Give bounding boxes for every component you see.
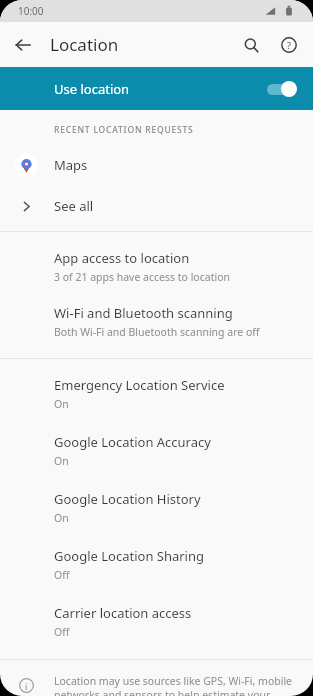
staticText: Use location [54, 80, 130, 98]
staticText: RECENT LOCATION REQUESTS [54, 124, 194, 136]
staticText: Off [54, 625, 70, 639]
staticText: Emergency Location Service [54, 376, 225, 394]
staticText: Maps [54, 156, 88, 174]
staticText: 3 of 21 apps have access to location [54, 270, 230, 284]
staticText: Google Location History [54, 490, 201, 508]
staticText: ? [287, 39, 291, 51]
button[interactable]: See all [0, 189, 313, 223]
button[interactable]: Google Location Accuracy [0, 433, 313, 468]
staticText: Carrier location access [54, 604, 192, 622]
button[interactable]: Use location [0, 67, 313, 110]
button[interactable]: Google Location Sharing [0, 547, 313, 582]
button[interactable]: Maps [0, 148, 313, 182]
staticText: On [54, 454, 69, 468]
staticText: App access to location [54, 249, 190, 267]
button[interactable]: App access to location [0, 232, 313, 284]
staticText: Location may use sources like GPS, Wi-Fi… [54, 674, 299, 696]
button[interactable]: Google Location History [0, 490, 313, 525]
button[interactable]: Wi-Fi and Bluetooth scanning [0, 304, 313, 339]
button[interactable]: Back [8, 30, 38, 60]
staticText: Off [54, 568, 70, 582]
staticText: On [54, 397, 69, 411]
staticText: Google Location Accuracy [54, 433, 211, 451]
staticText: 10:00 [18, 4, 44, 18]
staticText: Google Location Sharing [54, 547, 205, 565]
staticText: See all [54, 197, 94, 215]
button[interactable]: Emergency Location Service [0, 359, 313, 411]
staticText: On [54, 511, 69, 525]
staticText: Both Wi-Fi and Bluetooth scanning are of… [54, 325, 260, 339]
staticText: Wi-Fi and Bluetooth scanning [54, 304, 233, 322]
staticText: Location [50, 33, 119, 56]
button[interactable]: Help [273, 29, 305, 61]
staticText: i [25, 680, 28, 692]
button[interactable]: Search [235, 29, 267, 61]
button[interactable]: Carrier location access [0, 604, 313, 639]
